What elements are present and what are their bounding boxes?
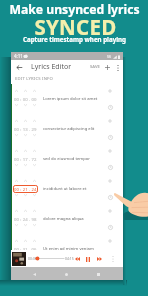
button[interactable]: Capture timestamp [105, 132, 115, 142]
button[interactable]: Recent apps [92, 268, 104, 280]
staticText: consectetur adipiscing elit [43, 126, 95, 132]
button[interactable]: 00 : 24 . 98 [11, 204, 123, 234]
staticText: 00 : 24 . 98 [14, 216, 37, 222]
staticText: Capture timestamp when playing [23, 35, 126, 43]
button[interactable]: SAVE [88, 61, 102, 73]
staticText: 4:11 [14, 53, 23, 59]
button[interactable]: Back [28, 268, 40, 280]
staticText: 00 : 00 . 00 [14, 96, 37, 102]
staticText: 04:15 [65, 256, 74, 261]
button[interactable]: More options [113, 63, 122, 72]
button[interactable]: 00 : 21 . 24 [11, 174, 123, 204]
staticText: 00 : 13 . 29 [14, 126, 37, 132]
staticText: Make unsynced lyrics [9, 1, 140, 18]
staticText: 00 : 31 . 06 [14, 246, 37, 250]
button[interactable]: Insert line [105, 236, 115, 246]
button[interactable]: Home [60, 268, 72, 280]
staticText: 00 : 17 . 72 [14, 156, 37, 162]
button[interactable]: Fast forward [94, 254, 104, 264]
button[interactable]: Capture timestamp [105, 162, 115, 172]
button[interactable]: Insert line [105, 116, 115, 126]
button[interactable]: 00 : 31 . 06 [11, 234, 123, 250]
button[interactable]: Insert line [105, 146, 115, 156]
button[interactable]: Pause [83, 254, 93, 264]
button[interactable]: Capture timestamp [105, 222, 115, 232]
button[interactable]: Capture timestamp [105, 192, 115, 202]
staticText: Lyrics Editor [31, 62, 72, 72]
staticText: Lorem ipsum dolor sit amet [43, 96, 98, 102]
button[interactable]: Capture timestamp [105, 102, 115, 112]
staticText: EDIT LYRICS INFO [15, 76, 53, 82]
staticText: SYNCED [34, 13, 117, 41]
staticText: 56 [107, 54, 112, 59]
button[interactable]: More options [108, 254, 117, 263]
button[interactable]: EDIT LYRICS INFO [11, 73, 123, 84]
staticText: 00:30 [28, 256, 37, 261]
button[interactable]: Rewind [72, 254, 82, 264]
staticText: Ut enim ad minim veniam [43, 246, 94, 250]
button[interactable]: Insert line [105, 86, 115, 96]
staticText: incididunt ut labore et [43, 186, 87, 192]
staticText: dolore magna aliqua [43, 216, 84, 222]
staticText: sed do eiusmod tempor [43, 156, 91, 162]
staticText: SAVE [90, 64, 100, 70]
staticText: 00 : 21 . 24 [14, 186, 37, 192]
button[interactable]: Insert line [105, 206, 115, 216]
button[interactable]: Back [13, 61, 25, 73]
button[interactable]: 00 : 17 . 72 [11, 144, 123, 174]
button[interactable]: 00 : 00 . 00 [11, 84, 123, 114]
button[interactable]: Add line [102, 62, 113, 73]
button[interactable]: Insert line [105, 176, 115, 186]
button[interactable]: 00 : 13 . 29 [11, 114, 123, 144]
